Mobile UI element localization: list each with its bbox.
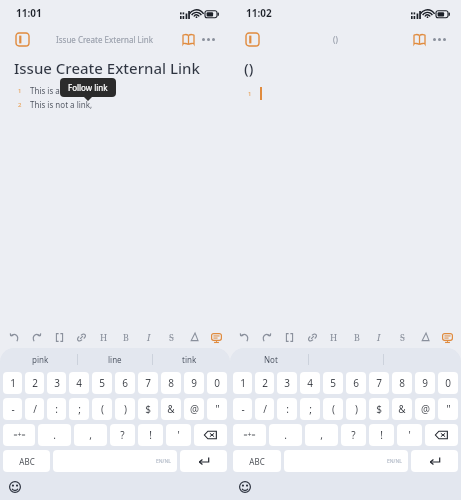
button[interactable]: 6 — [115, 372, 135, 394]
button[interactable]: $ — [138, 398, 158, 420]
button[interactable]: 7 — [369, 372, 389, 394]
button[interactable]: : — [47, 398, 66, 420]
staticText: & — [398, 402, 406, 416]
button[interactable]: Issue Create External Link — [56, 34, 154, 45]
button[interactable]: & — [161, 398, 181, 420]
button[interactable]: @ — [415, 398, 435, 420]
button[interactable]: Bold — [117, 328, 135, 346]
button[interactable]: Strikethrough — [393, 328, 411, 346]
button[interactable]: / — [255, 398, 274, 420]
button[interactable]: 5 — [323, 372, 343, 394]
button[interactable]: ? — [110, 424, 135, 446]
button[interactable]: 4 — [69, 372, 89, 394]
button[interactable]: Heading — [95, 328, 113, 346]
button[interactable]: Emoji — [3, 475, 27, 499]
button[interactable]: Link — [72, 328, 90, 346]
button[interactable]: $ — [369, 398, 389, 420]
button[interactable]: 1 — [233, 372, 252, 394]
button[interactable]: - — [233, 398, 252, 420]
button[interactable]: Undo — [235, 328, 253, 346]
button[interactable]: Link — [303, 328, 321, 346]
button[interactable]: Redo — [27, 328, 45, 346]
button[interactable]: , — [305, 424, 338, 446]
button[interactable]: . — [38, 424, 71, 446]
button[interactable]: ABC — [3, 450, 50, 472]
button[interactable]: Highlight — [416, 328, 434, 346]
button[interactable]: Brackets — [50, 328, 68, 346]
button[interactable]: . — [269, 424, 302, 446]
button[interactable]: ( — [323, 398, 343, 420]
button[interactable]: ? — [341, 424, 366, 446]
button[interactable]: Space — [284, 450, 408, 472]
button[interactable]: 1 — [3, 372, 22, 394]
button[interactable]: Enter — [411, 450, 458, 472]
button[interactable]: pink — [3, 348, 77, 370]
button[interactable]: ' — [166, 424, 191, 446]
button[interactable]: More options — [429, 29, 449, 49]
button[interactable]: 3 — [47, 372, 66, 394]
button[interactable]: 6 — [346, 372, 366, 394]
button[interactable]: ; — [69, 398, 89, 420]
button[interactable]: 0 — [207, 372, 227, 394]
button[interactable]: ) — [346, 398, 366, 420]
button[interactable]: 3 — [277, 372, 297, 394]
staticText: / — [33, 402, 37, 416]
button[interactable]: ! — [369, 424, 394, 446]
button[interactable]: 2 — [25, 372, 44, 394]
button[interactable]: & — [392, 398, 412, 420]
button[interactable]: Undo — [5, 328, 23, 346]
button[interactable]: 8 — [392, 372, 412, 394]
button[interactable]: Backspace — [194, 424, 227, 446]
button[interactable]: Backspace — [425, 424, 458, 446]
button[interactable]: Enter — [180, 450, 227, 472]
button[interactable]: ! — [138, 424, 163, 446]
button[interactable]: =+= — [3, 424, 35, 446]
button[interactable]: 8 — [161, 372, 181, 394]
button[interactable]: More options — [198, 29, 218, 49]
button[interactable]: ( — [92, 398, 112, 420]
button[interactable]: Space — [53, 450, 177, 472]
button[interactable]: Strikethrough — [162, 328, 180, 346]
button[interactable]: Brackets — [280, 328, 298, 346]
button[interactable]: Highlight — [185, 328, 203, 346]
button[interactable]: Italic — [370, 328, 388, 346]
button[interactable]: : — [277, 398, 297, 420]
button[interactable]: line — [77, 348, 152, 370]
button[interactable]: - — [3, 398, 22, 420]
button[interactable]: 4 — [300, 372, 320, 394]
button[interactable]: tink — [152, 348, 227, 370]
button[interactable]: , — [74, 424, 107, 446]
button[interactable]: ) — [115, 398, 135, 420]
button[interactable]: 5 — [92, 372, 112, 394]
button[interactable]: ABC — [233, 450, 281, 472]
button[interactable]: 9 — [415, 372, 435, 394]
button[interactable]: @ — [184, 398, 204, 420]
button[interactable]: Insert — [438, 328, 456, 346]
button[interactable]: Emoji — [233, 475, 257, 499]
button[interactable]: Reading mode — [178, 29, 198, 49]
button[interactable]: ; — [300, 398, 320, 420]
button[interactable]: Toggle sidebar — [12, 29, 32, 49]
button[interactable]: Redo — [257, 328, 275, 346]
button[interactable]: =+= — [233, 424, 266, 446]
button[interactable]: Toggle sidebar — [242, 29, 262, 49]
staticText: - — [11, 402, 15, 416]
button[interactable]: Bold — [348, 328, 366, 346]
button[interactable]: Reading mode — [409, 29, 429, 49]
button[interactable]: Not — [233, 348, 308, 370]
button[interactable]: 0 — [438, 372, 458, 394]
button[interactable]: Italic — [140, 328, 158, 346]
button[interactable]: Follow link — [60, 78, 116, 97]
button[interactable]: 9 — [184, 372, 204, 394]
button[interactable]: / — [25, 398, 44, 420]
button[interactable]: Heading — [325, 328, 343, 346]
button[interactable]: () — [333, 34, 338, 45]
button[interactable]: 2 — [255, 372, 274, 394]
button[interactable]: " — [438, 398, 458, 420]
button[interactable]: Insert — [207, 328, 225, 346]
button[interactable]: ' — [397, 424, 422, 446]
button[interactable]: " — [207, 398, 227, 420]
button[interactable]: 7 — [138, 372, 158, 394]
